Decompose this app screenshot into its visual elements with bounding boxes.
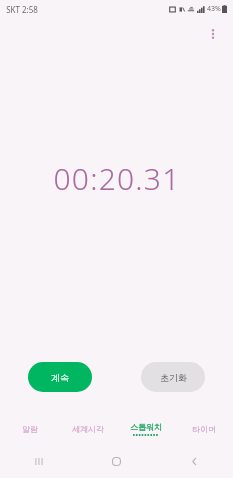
button[interactable]: 세계시각: [59, 416, 117, 442]
staticText: 타이머: [192, 424, 216, 434]
staticText: 계속: [51, 372, 69, 383]
staticText: 알람: [22, 424, 38, 434]
button[interactable]: 스톱워치: [117, 416, 175, 442]
button[interactable]: 타이머: [175, 416, 233, 442]
staticText: 43%: [207, 4, 221, 14]
staticText: 세계시각: [72, 424, 104, 434]
button[interactable]: Back: [155, 448, 233, 474]
staticText: 00:20.31: [53, 158, 181, 199]
staticText: SKT 2:58: [6, 4, 38, 15]
staticText: 초기화: [160, 372, 187, 383]
button[interactable]: 알람: [0, 416, 59, 442]
staticText: 스톱워치: [130, 422, 162, 432]
button[interactable]: More options: [199, 20, 227, 48]
button[interactable]: Home: [77, 448, 155, 474]
button[interactable]: Recents: [0, 448, 77, 474]
button[interactable]: 계속: [28, 362, 92, 392]
button[interactable]: 초기화: [141, 362, 205, 392]
